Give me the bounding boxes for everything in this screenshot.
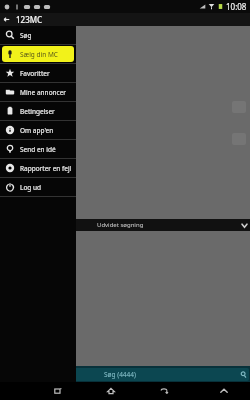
button[interactable]: Back (155, 382, 173, 400)
button[interactable]: Søg (4444) (1, 368, 249, 381)
staticText: Favoritter (20, 69, 50, 78)
button[interactable]: Mine annoncer (2, 84, 74, 100)
staticText: Sælg din MC (20, 50, 58, 59)
staticText: Betingelser (20, 107, 55, 116)
button[interactable]: Betingelser (2, 103, 74, 119)
button[interactable]: Expand (215, 382, 233, 400)
staticText: Udvidet søgning (97, 221, 144, 229)
button[interactable]: Favoritter (2, 65, 74, 81)
button[interactable]: Back (0, 13, 13, 26)
staticText: Søg (20, 31, 32, 40)
staticText: Søg (4444) (104, 370, 136, 379)
staticText: Send en idé (20, 145, 56, 154)
staticText: Om app'en (20, 126, 54, 135)
staticText: Log ud (20, 183, 42, 192)
button[interactable]: Udvidet søgning (0, 219, 250, 231)
button[interactable]: Recents (49, 382, 67, 400)
button[interactable]: Rapporter en fejl (2, 160, 74, 176)
button[interactable]: Sælg din MC (2, 46, 74, 62)
staticText: Rapporter en fejl (20, 164, 72, 173)
button[interactable]: Log ud (2, 179, 74, 195)
staticText: Mine annoncer (20, 88, 67, 97)
button[interactable]: Søg (2, 27, 74, 43)
button[interactable]: Send en idé (2, 141, 74, 157)
staticText: 123MC (16, 14, 43, 25)
button[interactable]: Home (102, 382, 120, 400)
button[interactable]: Om app'en (2, 122, 74, 138)
staticText: 10:08 (226, 1, 247, 12)
